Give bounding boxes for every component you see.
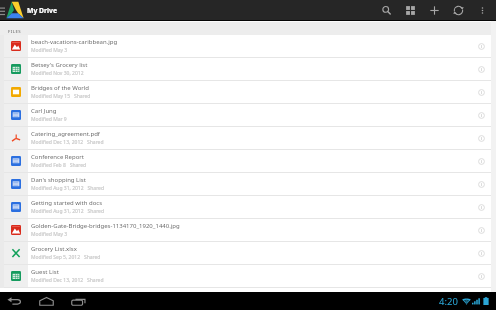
button[interactable]: More options [470,0,494,20]
staticText: Golden-Gate-Bridge-bridges-1134170_1920_… [31,222,180,230]
staticText: Modified May 3 [31,47,68,54]
button[interactable]: Catering_agreement.pdf [0,127,496,150]
button[interactable]: File details [468,150,494,172]
button[interactable]: File details [468,219,494,241]
staticText: Modified Feb 8 Shared [31,162,87,169]
staticText: Modified Dec 13, 2012 Shared [31,277,104,284]
staticText: Modified May 15 Shared [31,93,91,100]
button[interactable]: File details [468,58,494,80]
button[interactable]: File details [468,127,494,149]
button[interactable]: File details [468,196,494,218]
staticText: Modified Nov 30, 2012 [31,70,84,77]
button[interactable]: Back [6,292,22,310]
staticText: Getting started with docs [31,199,103,207]
button[interactable]: Bridges of the World [0,81,496,104]
staticText: beach-vacations-caribbean.jpg [31,38,118,46]
button[interactable]: Conference Report [0,150,496,173]
staticText: Modified Sep 5, 2012 Shared [31,254,101,261]
button[interactable]: Grocery List.xlsx [0,242,496,265]
button[interactable]: File details [468,242,494,264]
button[interactable]: Recent apps [70,292,86,310]
button[interactable]: Getting started with docs [0,196,496,219]
staticText: Catering_agreement.pdf [31,130,100,138]
button[interactable]: Search [374,0,398,20]
staticText: Modified May 3 [31,231,68,238]
button[interactable]: Carl Jung [0,104,496,127]
button[interactable]: File details [468,173,494,195]
button[interactable]: File details [468,35,494,57]
button[interactable]: Golden-Gate-Bridge-bridges-1134170_1920_… [0,219,496,242]
staticText: FILES [8,28,22,34]
button[interactable]: File details [468,265,494,287]
staticText: Modified Mar 9 [31,116,67,123]
button[interactable]: Guest List [0,265,496,288]
staticText: Modified Aug 31, 2012 Shared [31,208,104,215]
button[interactable]: Open navigation drawer [0,0,58,20]
button[interactable]: Dan's shopping List [0,173,496,196]
button[interactable]: Switch to grid view [398,0,422,20]
staticText: Dan's shopping List [31,176,86,184]
staticText: Bridges of the World [31,84,90,92]
staticText: 4:20 [439,295,458,308]
button[interactable]: Refresh [446,0,470,20]
button[interactable]: File details [468,81,494,103]
staticText: Conference Report [31,153,84,161]
staticText: Modified Dec 13, 2012 Shared [31,139,104,146]
staticText: My Drive [27,6,58,15]
button[interactable]: New [422,0,446,20]
button[interactable]: Home [38,292,54,310]
button[interactable]: beach-vacations-caribbean.jpg [0,35,496,58]
button[interactable]: File details [468,104,494,126]
staticText: Carl Jung [31,107,57,115]
staticText: Betsey's Grocery list [31,61,88,69]
staticText: Modified Aug 31, 2012 Shared [31,185,104,192]
button[interactable]: Betsey's Grocery list [0,58,496,81]
staticText: Grocery List.xlsx [31,245,77,253]
staticText: Guest List [31,268,59,276]
